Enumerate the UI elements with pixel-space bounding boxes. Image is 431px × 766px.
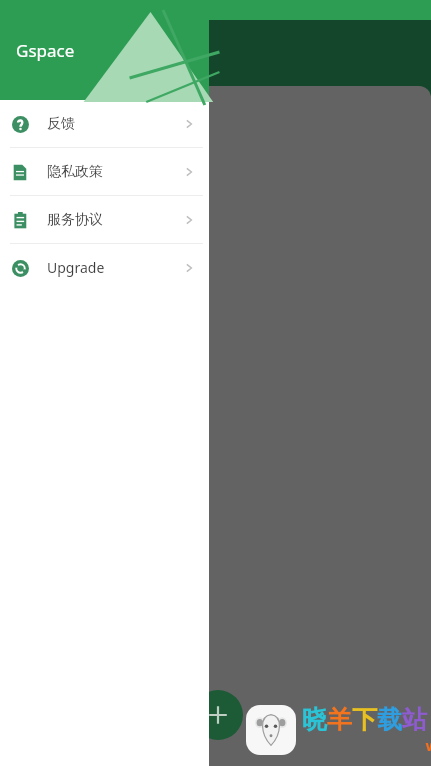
staticText: 服务协议 — [47, 211, 103, 229]
staticText: 隐私政策 — [47, 163, 103, 181]
button[interactable]: 服务协议 — [0, 196, 209, 243]
button[interactable]: Upgrade — [0, 244, 209, 291]
staticText: 下 — [352, 704, 377, 735]
button[interactable]: Add — [193, 690, 243, 740]
button[interactable]: 隐私政策 — [0, 148, 209, 195]
staticText: 站 — [402, 704, 427, 735]
staticText: 方三框架 — [18, 52, 94, 76]
button[interactable]: 反馈 — [0, 100, 209, 147]
staticText: 羊 — [327, 704, 352, 735]
staticText: www.xfhygs.com — [302, 735, 431, 755]
staticText: 晓 — [302, 704, 327, 735]
staticText: 载 — [377, 704, 402, 735]
staticText: Upgrade — [47, 258, 105, 277]
staticText: Gspace — [16, 39, 75, 62]
staticText: 反馈 — [47, 115, 75, 133]
